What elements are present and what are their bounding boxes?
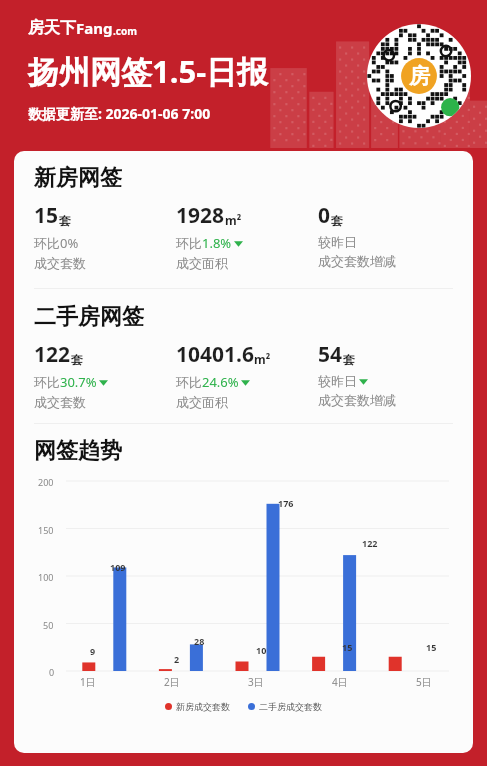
staticText: 1.8% <box>202 234 232 252</box>
staticText: 新房网签 <box>34 164 122 192</box>
staticText: 扬州网签1.5-日报 <box>28 50 269 92</box>
staticText: 套 <box>71 352 83 367</box>
staticText: 二手房网签 <box>34 303 144 331</box>
staticText: 0 <box>318 201 331 230</box>
staticText: 176 <box>278 497 294 509</box>
button[interactable]: 二手房成交套数 <box>248 701 322 712</box>
staticText: 成交面积 <box>176 394 228 410</box>
staticText: 15 <box>426 641 437 653</box>
staticText: 15 <box>34 201 59 230</box>
staticText: 122 <box>362 537 378 549</box>
staticText: m² <box>254 351 271 367</box>
staticText: m² <box>225 212 242 228</box>
staticText: 环比 <box>176 235 202 251</box>
staticText: 房 <box>409 63 430 89</box>
staticText: 房天下 <box>28 18 76 38</box>
staticText: 122 <box>34 340 71 369</box>
staticText: 1日 <box>80 675 96 689</box>
button[interactable]: 新房成交套数 <box>165 701 230 712</box>
staticText: 9 <box>90 645 96 657</box>
staticText: 环比 <box>34 235 60 251</box>
staticText: 24.6% <box>202 373 239 391</box>
staticText: 150 <box>38 524 54 536</box>
staticText: 套 <box>59 213 71 228</box>
staticText: 成交套数 <box>34 394 86 410</box>
staticText: 2日 <box>164 675 180 689</box>
staticText: 0% <box>60 234 79 252</box>
staticText: 套 <box>331 213 343 228</box>
staticText: 环比 <box>176 374 202 390</box>
staticText: 100 <box>38 571 54 583</box>
staticText: 较昨日 <box>318 234 357 250</box>
staticText: 数据更新至: 2026-01-06 7:00 <box>28 104 211 123</box>
staticText: 新房成交套数 <box>176 701 230 712</box>
button[interactable]: 扫码关注房天下公众号 <box>367 24 471 128</box>
staticText: 50 <box>43 619 54 631</box>
staticText: 28 <box>194 635 205 647</box>
staticText: 成交套数增减 <box>318 253 396 269</box>
staticText: 成交套数 <box>34 255 86 271</box>
staticText: 二手房成交套数 <box>259 701 322 712</box>
staticText: 2 <box>174 653 180 665</box>
staticText: 54 <box>318 340 343 369</box>
staticText: 环比 <box>34 374 60 390</box>
staticText: 成交套数增减 <box>318 392 396 408</box>
staticText: 109 <box>110 561 126 573</box>
staticText: 1928 <box>176 201 225 230</box>
staticText: Fang <box>76 18 113 38</box>
staticText: 10401.6 <box>176 340 254 369</box>
staticText: 30.7% <box>60 373 97 391</box>
staticText: .com <box>113 24 137 38</box>
staticText: 10 <box>256 644 267 656</box>
staticText: 4日 <box>332 675 348 689</box>
staticText: 成交面积 <box>176 255 228 271</box>
staticText: 15 <box>342 641 353 653</box>
staticText: 套 <box>343 352 355 367</box>
staticText: 3日 <box>248 675 264 689</box>
staticText: 较昨日 <box>318 373 357 389</box>
staticText: 0 <box>49 666 55 678</box>
staticText: 200 <box>38 476 54 488</box>
staticText: 5日 <box>416 675 432 689</box>
staticText: 网签趋势 <box>34 437 122 465</box>
